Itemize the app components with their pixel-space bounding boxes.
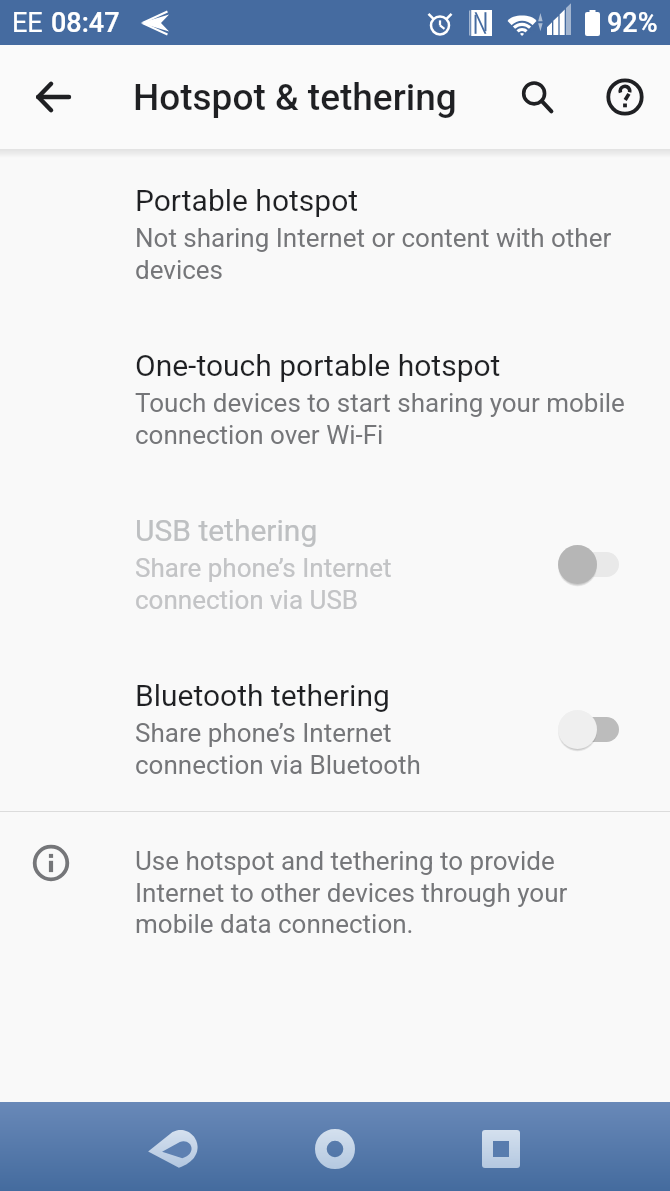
staticText: 92% xyxy=(607,7,658,39)
staticText: Share phone’s Internet connection via Bl… xyxy=(135,718,421,780)
button[interactable]: Bluetooth tethering xyxy=(0,678,670,780)
staticText: EE xyxy=(12,7,43,39)
button[interactable]: Help xyxy=(580,52,670,142)
staticText: Bluetooth tethering xyxy=(135,678,390,713)
staticText: 08:47 xyxy=(51,7,120,39)
button[interactable] xyxy=(558,538,619,590)
button[interactable]: Back xyxy=(130,1106,220,1191)
button[interactable]: Navigate up xyxy=(0,45,105,149)
staticText: Hotspot & tethering xyxy=(133,76,457,119)
staticText: USB tethering xyxy=(135,513,318,548)
button[interactable]: One-touch portable hotspot xyxy=(0,348,670,450)
button[interactable]: USB tethering xyxy=(0,513,670,615)
button[interactable]: Portable hotspot xyxy=(0,183,670,285)
button[interactable]: Search xyxy=(494,54,580,140)
staticText: Use hotspot and tethering to provide Int… xyxy=(135,846,568,939)
staticText: Not sharing Internet or content with oth… xyxy=(135,223,612,285)
staticText: One-touch portable hotspot xyxy=(135,348,501,383)
staticText: Touch devices to start sharing your mobi… xyxy=(135,388,625,450)
button[interactable] xyxy=(558,703,619,755)
staticText: Portable hotspot xyxy=(135,183,359,218)
staticText: Share phone’s Internet connection via US… xyxy=(135,553,392,615)
button[interactable]: Recent apps xyxy=(456,1106,546,1191)
button[interactable]: Home xyxy=(290,1106,380,1191)
